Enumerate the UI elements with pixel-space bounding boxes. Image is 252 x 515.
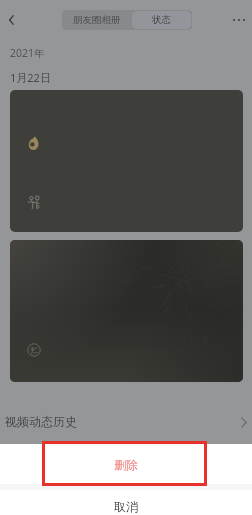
button[interactable]: 状态: [132, 11, 191, 29]
staticText: 取消: [114, 499, 138, 514]
button[interactable]: 删除: [0, 444, 252, 485]
staticText: 删除: [114, 457, 138, 472]
staticText: 朋友圈相册: [73, 14, 121, 26]
staticText: 状态: [152, 14, 171, 26]
staticText: 2021年: [10, 46, 45, 60]
staticText: 视频动态历史: [5, 414, 77, 429]
staticText: 1月22日: [10, 70, 51, 85]
button[interactable]: Back: [0, 7, 22, 32]
button[interactable]: 朋友圈相册: [62, 10, 131, 30]
button[interactable]: 视频动态历史: [0, 388, 252, 444]
button[interactable]: More options: [226, 7, 252, 32]
button[interactable]: [10, 90, 243, 232]
button[interactable]: 取消: [0, 490, 252, 515]
button[interactable]: [10, 240, 243, 382]
